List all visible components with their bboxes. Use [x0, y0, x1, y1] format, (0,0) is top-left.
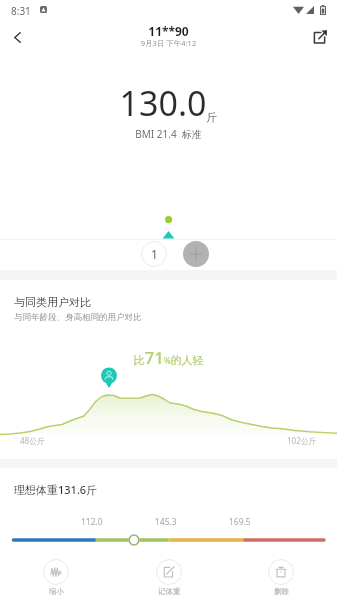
- button[interactable]: 1: [141, 241, 167, 267]
- staticText: 8:31: [11, 4, 31, 18]
- staticText: 记体重: [158, 587, 181, 596]
- button[interactable]: 删除: [255, 559, 307, 596]
- staticText: BMI 21.4 标准: [0, 127, 337, 141]
- staticText: 112.0: [81, 516, 103, 528]
- staticText: 1: [151, 246, 158, 262]
- button[interactable]: Add: [183, 241, 209, 267]
- staticText: 比71%的人轻: [0, 346, 337, 369]
- staticText: 130.0斤: [0, 80, 337, 126]
- staticText: 与同年龄段、身高相同的用户对比: [14, 312, 142, 323]
- staticText: 与同类用户对比: [14, 295, 91, 309]
- staticText: 169.5: [229, 516, 251, 528]
- button[interactable]: Share: [303, 20, 337, 54]
- staticText: 理想体重131.6斤: [14, 482, 98, 497]
- staticText: 145.3: [155, 516, 177, 528]
- staticText: 48公斤: [20, 435, 46, 446]
- staticText: 102公斤: [287, 435, 317, 446]
- button[interactable]: Back: [2, 20, 36, 54]
- button[interactable]: 记体重: [143, 559, 195, 596]
- button[interactable]: 缩小: [30, 559, 82, 596]
- staticText: 9月3日 下午4:12: [0, 38, 337, 48]
- staticText: 11**90: [0, 23, 337, 39]
- staticText: 缩小: [49, 587, 64, 596]
- staticText: 删除: [274, 587, 289, 596]
